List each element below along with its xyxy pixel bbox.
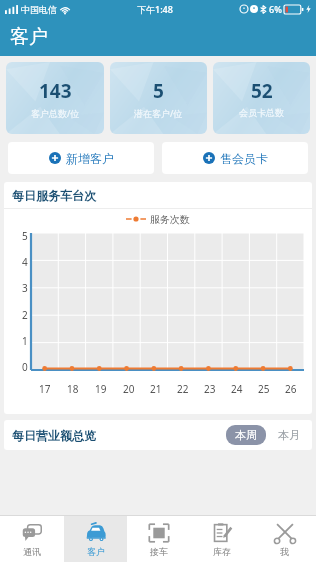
button[interactable]: 新增客户 xyxy=(8,142,154,174)
button[interactable]: 52 xyxy=(213,62,310,134)
staticText: 我 xyxy=(280,546,289,557)
button[interactable]: 5 xyxy=(110,62,207,134)
staticText: 22 xyxy=(177,382,189,396)
staticText: 本月 xyxy=(278,428,300,442)
staticText: 21 xyxy=(150,382,162,396)
staticText: 17 xyxy=(39,382,51,396)
staticText: 库存 xyxy=(213,546,231,557)
button[interactable]: 本周 xyxy=(226,425,266,445)
staticText: 客户 xyxy=(10,25,48,49)
button[interactable]: 通讯 xyxy=(0,516,64,562)
staticText: 1 xyxy=(22,334,28,348)
other: 客户 xyxy=(85,522,107,544)
staticText: 6% xyxy=(269,3,282,15)
staticText: 服务次数 xyxy=(150,213,190,226)
staticText: 客户总数/位 xyxy=(31,107,80,119)
button[interactable]: 库存 xyxy=(190,516,253,562)
staticText: 通讯 xyxy=(23,546,41,557)
staticText: 每日服务车台次 xyxy=(12,188,96,203)
staticText: 4 xyxy=(22,255,28,269)
staticText: 52 xyxy=(251,78,273,104)
other: 接车 xyxy=(148,522,170,544)
staticText: 售会员卡 xyxy=(220,151,268,166)
staticText: 会员卡总数 xyxy=(239,107,284,118)
staticText: 5 xyxy=(153,78,164,104)
staticText: 24 xyxy=(231,382,243,396)
staticText: 23 xyxy=(204,382,216,396)
button[interactable]: 售会员卡 xyxy=(162,142,308,174)
staticText: 每日营业额总览 xyxy=(12,428,96,443)
button[interactable]: 143 xyxy=(6,62,104,134)
staticText: 25 xyxy=(258,382,270,396)
staticText: 2 xyxy=(22,308,28,322)
staticText: 0 xyxy=(22,360,28,374)
other: 库存 xyxy=(211,522,233,544)
staticText: 中国电信 xyxy=(21,4,57,15)
staticText: 客户 xyxy=(87,546,105,557)
button[interactable]: 客户 xyxy=(64,516,127,562)
staticText: 本周 xyxy=(235,428,257,442)
staticText: 26 xyxy=(285,382,297,396)
other: 通讯 xyxy=(21,522,43,544)
staticText: 20 xyxy=(123,382,135,396)
staticText: 19 xyxy=(95,382,107,396)
button[interactable]: 接车 xyxy=(127,516,190,562)
button[interactable]: 我 xyxy=(253,516,316,562)
staticText: 下午1:48 xyxy=(137,3,173,15)
staticText: 3 xyxy=(22,281,28,295)
staticText: 143 xyxy=(39,78,72,104)
other: 我 xyxy=(274,522,296,544)
staticText: 5 xyxy=(22,229,28,243)
staticText: 接车 xyxy=(150,546,168,557)
button[interactable]: 本月 xyxy=(274,425,304,445)
staticText: 18 xyxy=(67,382,79,396)
staticText: 潜在客户/位 xyxy=(134,107,183,119)
staticText: 新增客户 xyxy=(66,151,114,166)
